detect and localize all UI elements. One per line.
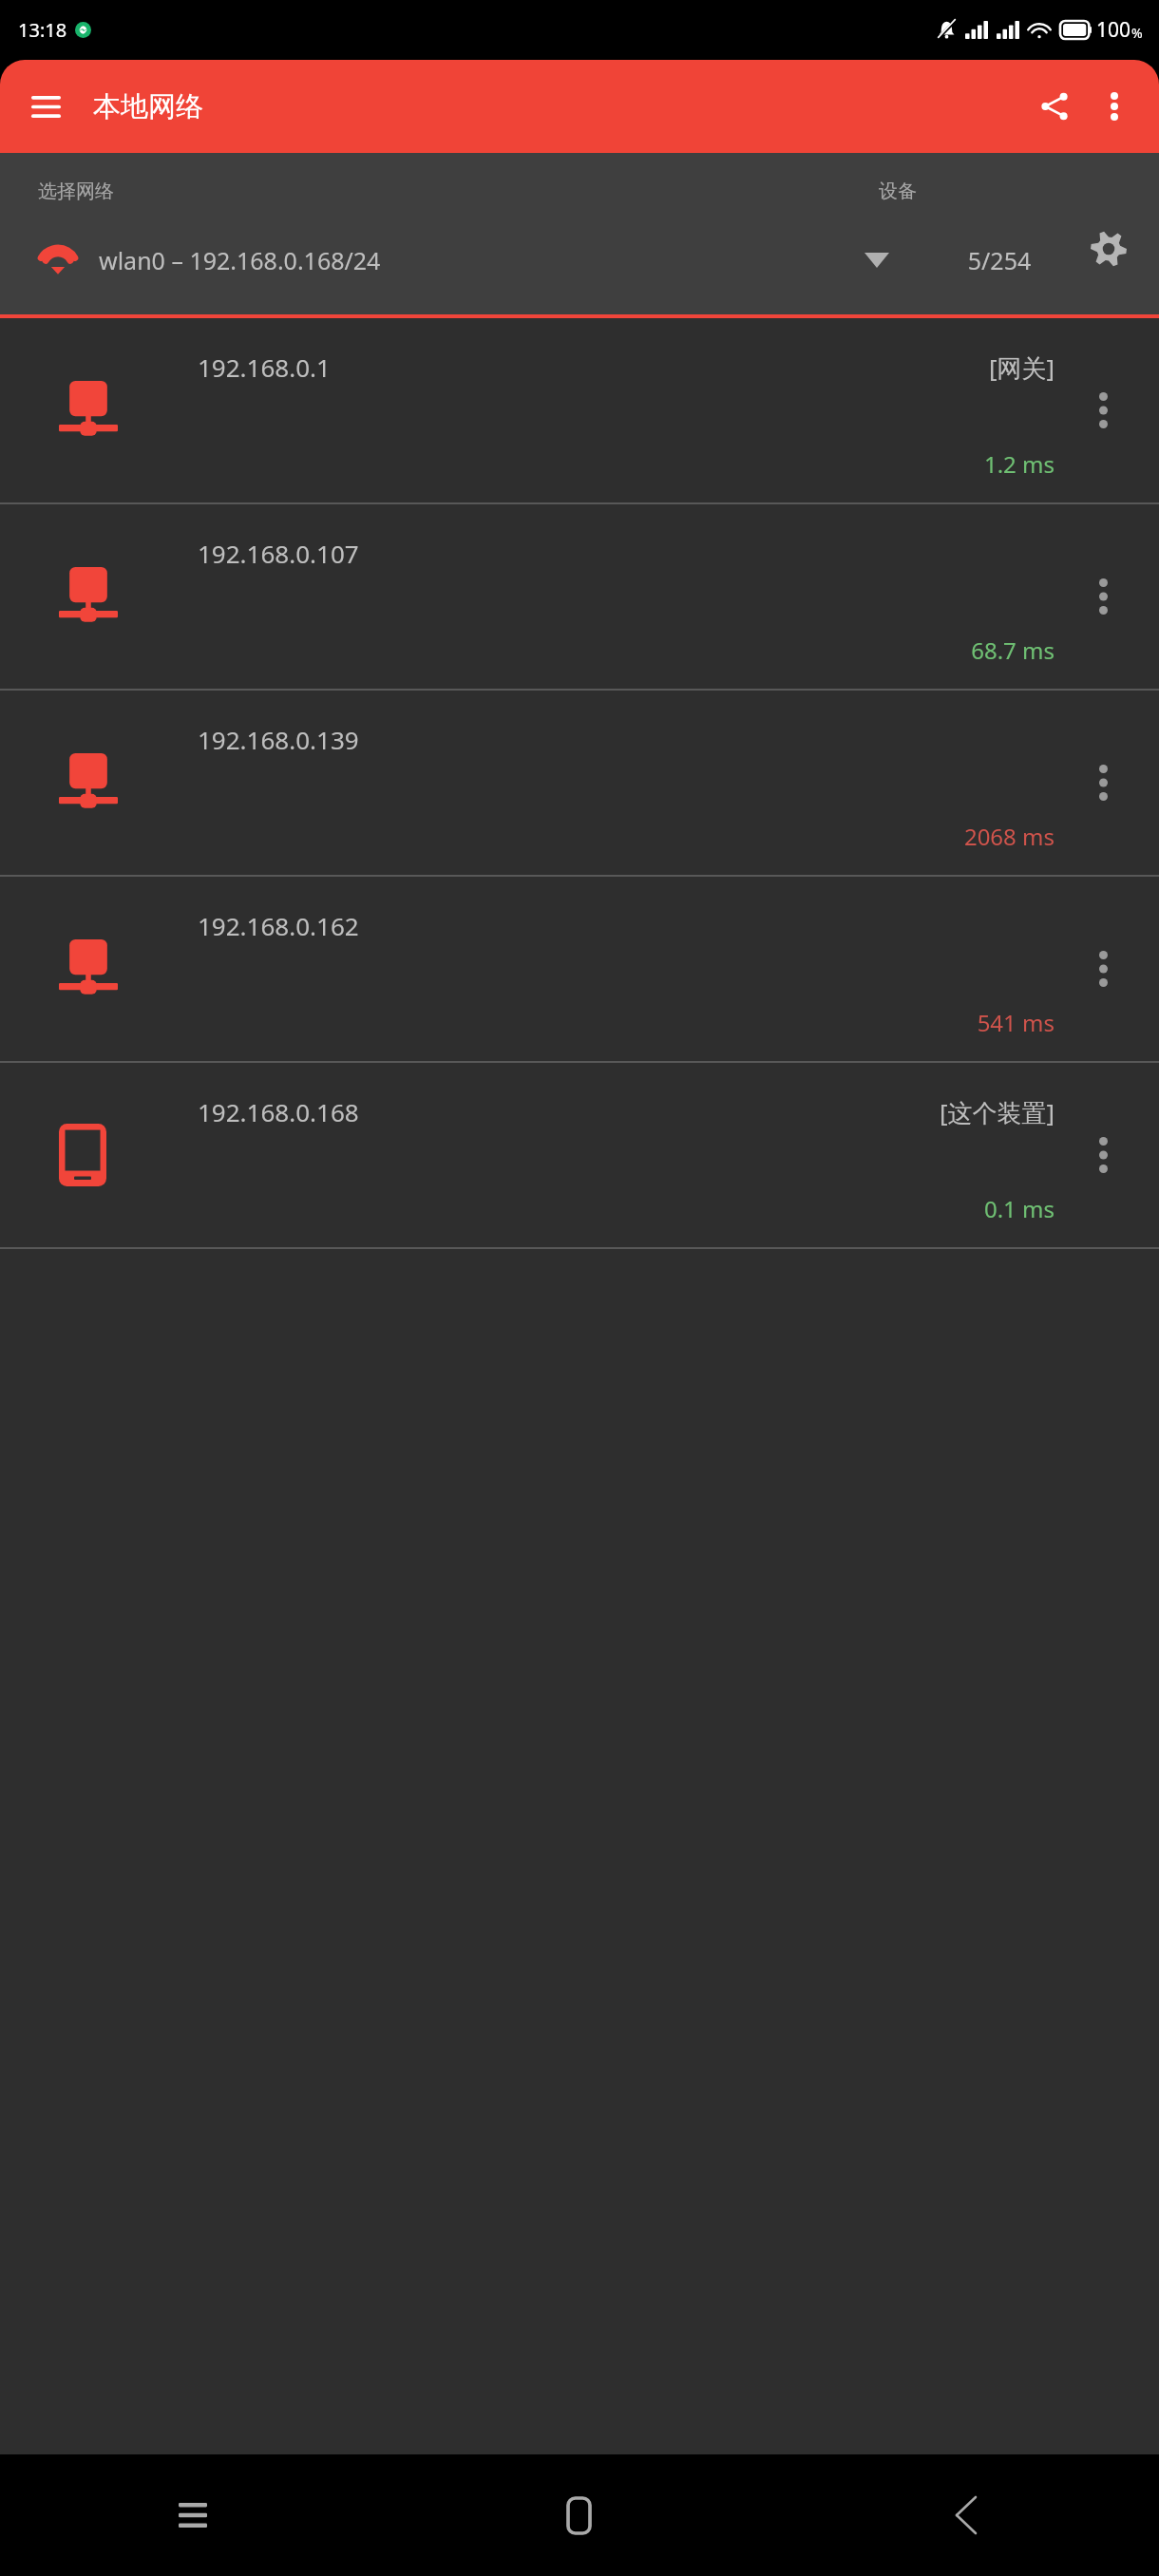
- button[interactable]: 192.168.0.168: [0, 1063, 1159, 1247]
- button[interactable]: 192.168.0.1: [0, 318, 1159, 502]
- button[interactable]: Back: [772, 2454, 1159, 2576]
- button[interactable]: More options for 192.168.0.139: [1073, 753, 1132, 812]
- button[interactable]: More options for 192.168.0.107: [1073, 567, 1132, 626]
- button[interactable]: More options for 192.168.0.162: [1073, 939, 1132, 998]
- staticText: 192.168.0.139: [198, 723, 359, 756]
- button[interactable]: More options for 192.168.0.1: [1073, 381, 1132, 440]
- staticText: [网关]: [988, 350, 1054, 385]
- staticText: 5/254: [923, 244, 1075, 276]
- staticText: 0.1 ms: [983, 1193, 1054, 1224]
- staticText: [这个装置]: [939, 1095, 1054, 1129]
- staticText: 设备: [879, 180, 917, 203]
- button[interactable]: More options: [1085, 77, 1144, 136]
- staticText: 本地网络: [93, 89, 203, 124]
- staticText: 192.168.0.162: [198, 909, 359, 942]
- staticText: 192.168.0.1: [198, 350, 331, 384]
- button[interactable]: 192.168.0.162: [0, 877, 1159, 1061]
- button[interactable]: Open navigation drawer: [19, 80, 72, 133]
- button[interactable]: More options for 192.168.0.168: [1073, 1126, 1132, 1184]
- button[interactable]: wlan0 – 192.168.0.168/24: [0, 227, 923, 294]
- button[interactable]: Share: [1024, 76, 1085, 137]
- staticText: 选择网络: [38, 180, 114, 203]
- staticText: 100: [1096, 16, 1131, 44]
- staticText: 1.2 ms: [983, 448, 1054, 480]
- staticText: wlan0 – 192.168.0.168/24: [99, 244, 381, 276]
- staticText: 13:18: [18, 17, 67, 43]
- button[interactable]: 192.168.0.139: [0, 691, 1159, 875]
- staticText: 68.7 ms: [971, 635, 1054, 666]
- staticText: 192.168.0.168: [198, 1095, 359, 1128]
- staticText: 2068 ms: [963, 821, 1054, 852]
- staticText: 541 ms: [977, 1007, 1054, 1038]
- button[interactable]: Recent apps: [0, 2454, 386, 2576]
- button[interactable]: Home: [386, 2454, 772, 2576]
- staticText: 192.168.0.107: [198, 537, 359, 570]
- button[interactable]: 192.168.0.107: [0, 504, 1159, 689]
- button[interactable]: Settings: [1075, 227, 1142, 294]
- staticText: %: [1131, 24, 1143, 42]
